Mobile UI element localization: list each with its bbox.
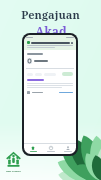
button[interactable]: History <box>42 144 59 154</box>
button[interactable] <box>27 79 44 81</box>
button[interactable] <box>62 72 73 76</box>
button[interactable]: Home <box>24 144 42 154</box>
button[interactable] <box>24 91 76 94</box>
button[interactable]: Profile <box>59 144 76 154</box>
staticText: BMT TAMZIS <box>6 169 21 172</box>
button[interactable]: App logo <box>5 151 22 172</box>
button[interactable] <box>24 57 76 65</box>
button[interactable] <box>27 73 33 76</box>
staticText: Akad <box>35 23 67 39</box>
staticText: Pengajuan <box>21 7 80 22</box>
